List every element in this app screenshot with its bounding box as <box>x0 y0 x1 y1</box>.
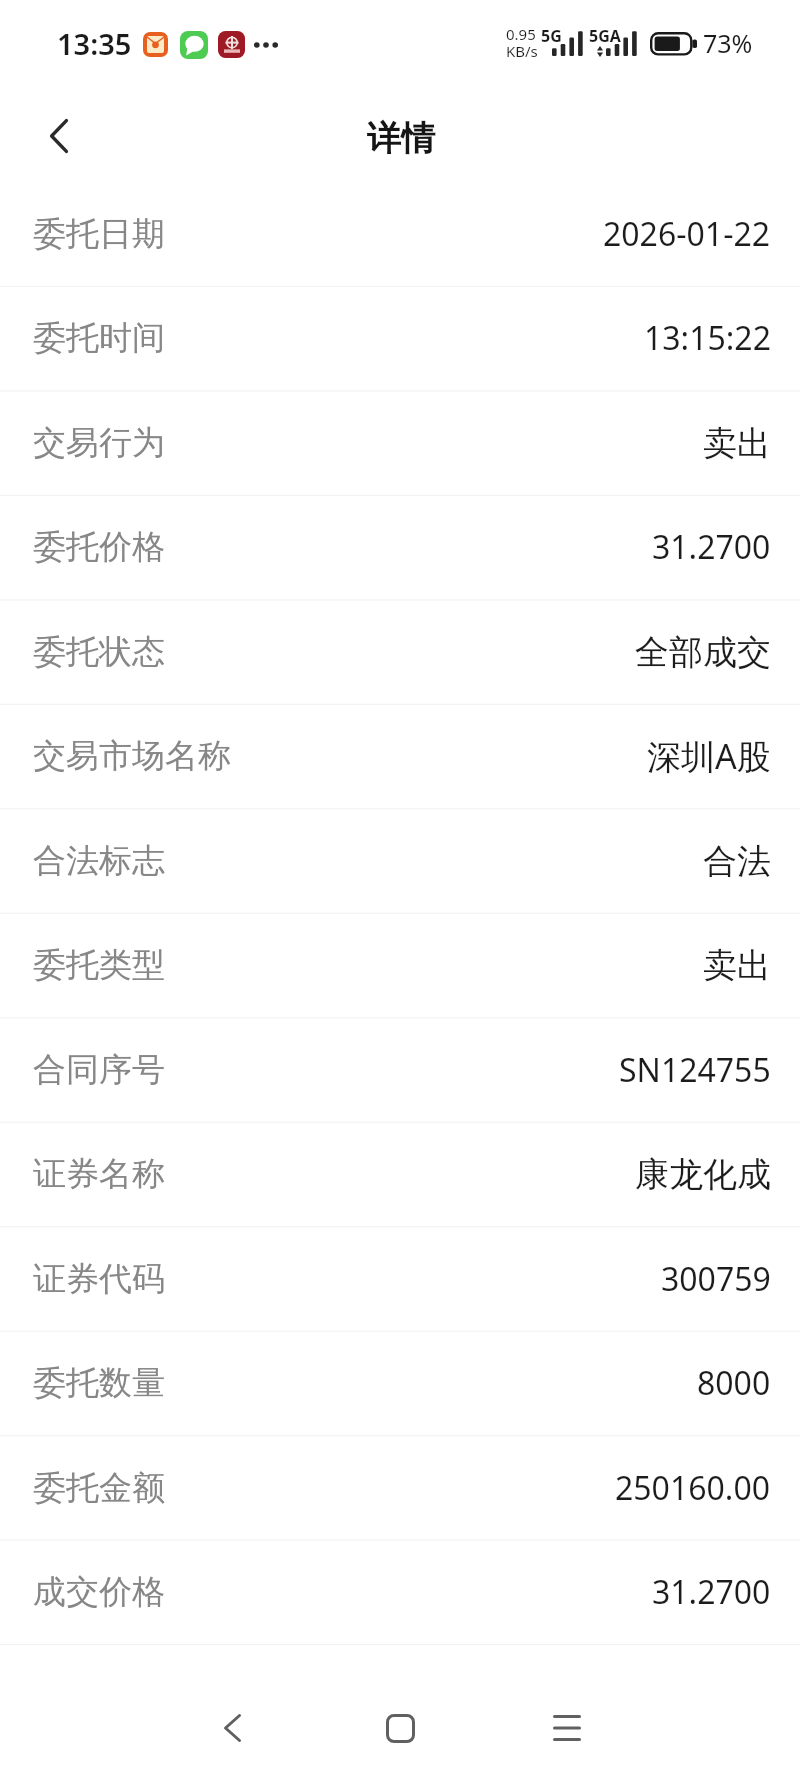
button[interactable]: 委托时间 <box>0 286 800 390</box>
staticText: 300759 <box>661 1257 771 1301</box>
button[interactable]: 合同序号 <box>0 1018 800 1122</box>
staticText: 5GA <box>589 25 621 47</box>
staticText: 证券名称 <box>33 1153 165 1195</box>
button[interactable]: 委托金额 <box>0 1436 800 1540</box>
staticText: 8000 <box>697 1361 771 1405</box>
button[interactable]: 成交价格 <box>0 1540 800 1644</box>
button[interactable]: 证券名称 <box>0 1122 800 1226</box>
button[interactable]: Back <box>26 103 92 169</box>
staticText: 13:35 <box>57 24 132 63</box>
staticText: KB/s <box>506 41 538 61</box>
staticText: 卖出 <box>703 944 771 987</box>
staticText: 交易市场名称 <box>33 735 231 777</box>
staticText: 31.2700 <box>652 1570 771 1614</box>
staticText: 13:15:22 <box>644 316 771 360</box>
staticText: 委托数量 <box>33 1362 165 1404</box>
staticText: 2026-01-22 <box>603 212 771 256</box>
staticText: 全部成交 <box>635 631 771 674</box>
staticText: 31.2700 <box>652 525 771 569</box>
button[interactable]: 交易行为 <box>0 391 800 495</box>
button[interactable]: 委托状态 <box>0 600 800 704</box>
staticText: 委托类型 <box>33 944 165 986</box>
button[interactable]: Back <box>192 1688 272 1768</box>
staticText: 250160.00 <box>615 1466 771 1510</box>
staticText: 合同序号 <box>33 1049 165 1091</box>
staticText: 委托状态 <box>33 631 165 673</box>
staticText: 成交价格 <box>33 1571 165 1613</box>
staticText: 0.95 <box>506 24 536 44</box>
staticText: 深圳A股 <box>647 733 771 779</box>
staticText: 交易行为 <box>33 422 165 464</box>
staticText: 委托价格 <box>33 526 165 568</box>
staticText: 卖出 <box>703 422 771 465</box>
staticText: 合法标志 <box>33 840 165 882</box>
button[interactable]: 委托类型 <box>0 913 800 1017</box>
button[interactable]: 委托价格 <box>0 495 800 599</box>
button[interactable]: 委托数量 <box>0 1331 800 1435</box>
staticText: 委托金额 <box>33 1467 165 1509</box>
staticText: 委托时间 <box>33 317 165 359</box>
staticText: 证券代码 <box>33 1258 165 1300</box>
staticText: 73% <box>703 26 753 60</box>
staticText: SN124755 <box>619 1048 771 1092</box>
button[interactable]: 合法标志 <box>0 809 800 913</box>
staticText: 5G <box>541 25 562 47</box>
button[interactable]: 证券代码 <box>0 1227 800 1331</box>
staticText: 合法 <box>703 840 771 883</box>
staticText: 委托日期 <box>33 213 165 255</box>
staticText: 康龙化成 <box>635 1153 771 1196</box>
staticText: 详情 <box>367 117 435 160</box>
button[interactable]: 交易市场名称 <box>0 704 800 808</box>
button[interactable]: 委托日期 <box>0 182 800 286</box>
button[interactable]: Home <box>360 1688 440 1768</box>
button[interactable]: Menu <box>527 1688 607 1768</box>
